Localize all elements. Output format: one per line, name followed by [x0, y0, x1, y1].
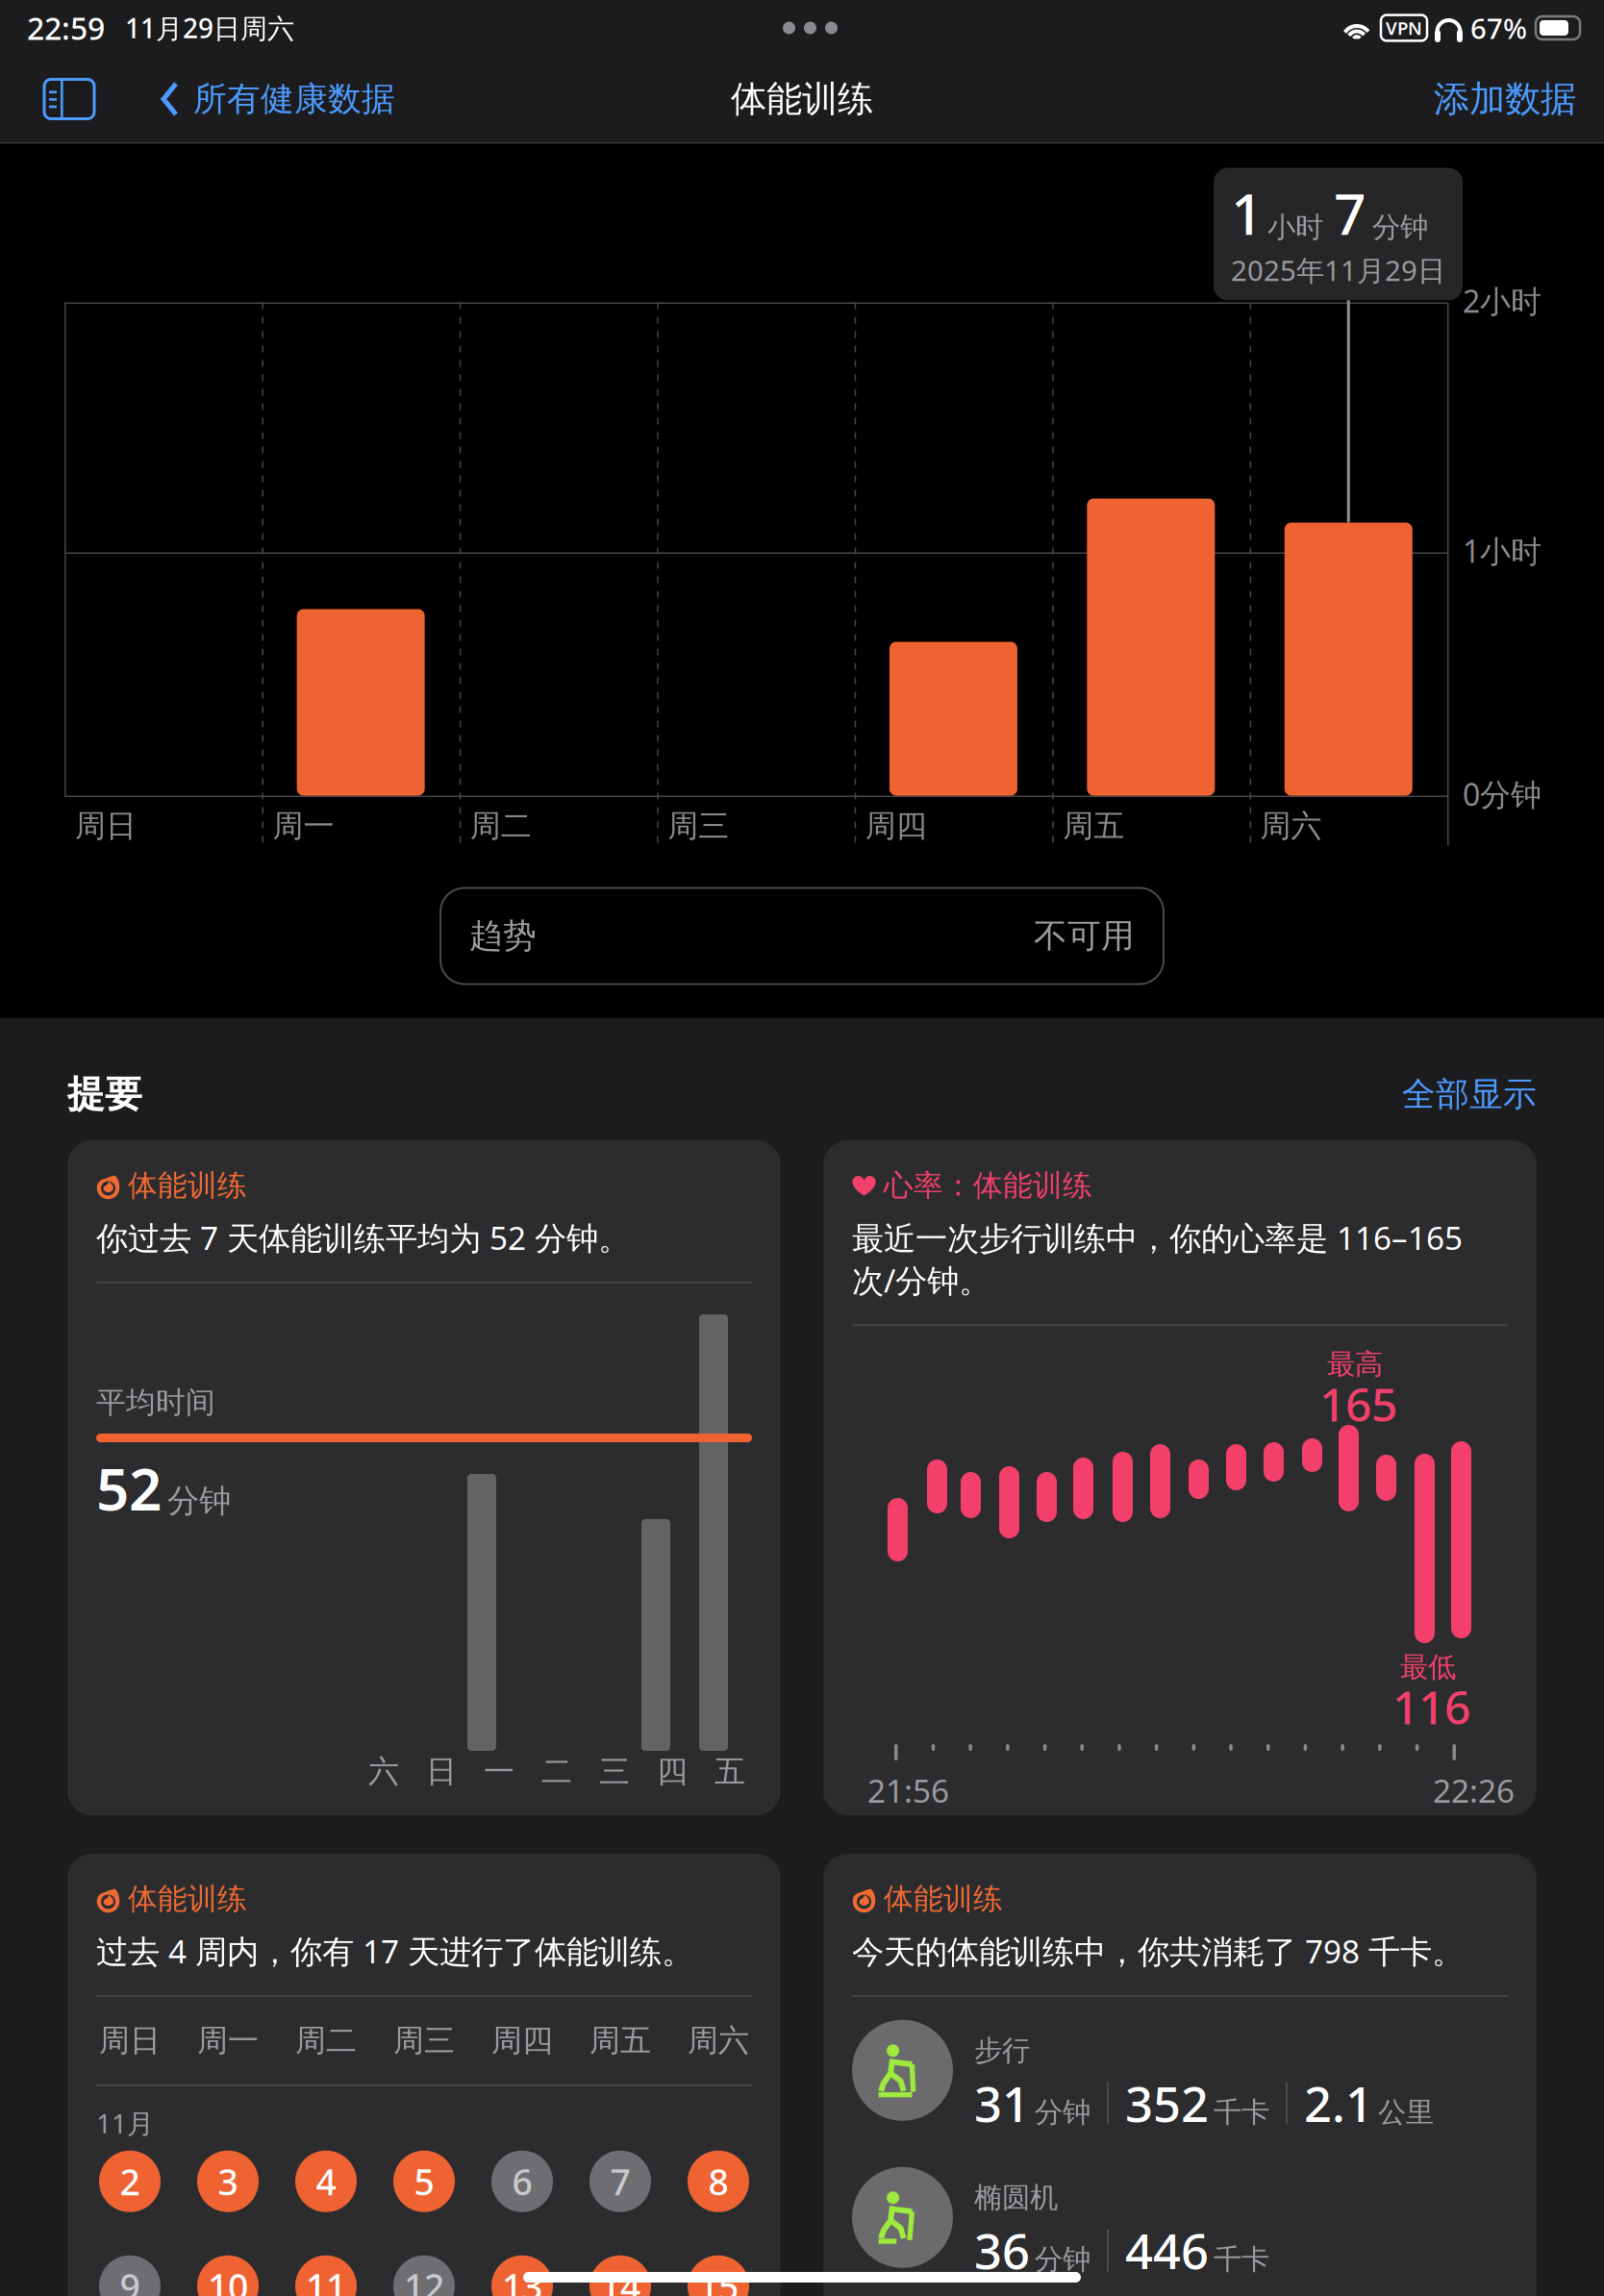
staticText: 22:26: [1433, 1769, 1515, 1812]
staticText: 周六: [1260, 807, 1322, 845]
staticText: 周二: [295, 2022, 357, 2060]
staticText: 周六: [688, 2022, 749, 2060]
staticText: 36: [974, 2218, 1030, 2283]
staticText: 22:59: [27, 7, 105, 48]
staticText: 周一: [197, 2022, 259, 2060]
staticText: 最近一次步行训练中，你的心率是 116–165 次/分钟。: [852, 1216, 1463, 1301]
staticText: 日: [426, 1753, 457, 1791]
staticText: 最高: [1327, 1347, 1383, 1382]
staticText: 周四: [491, 2022, 553, 2060]
staticText: 分钟: [1035, 2095, 1090, 2130]
staticText: 最低: [1400, 1650, 1456, 1685]
staticText: 9: [120, 2262, 140, 2296]
staticText: 14: [600, 2262, 640, 2296]
button[interactable]: 体能训练: [823, 1854, 1537, 2296]
staticText: 8: [708, 2158, 728, 2205]
staticText: 平均时间: [96, 1385, 215, 1421]
staticText: 11月29日周六: [125, 10, 294, 46]
staticText: 周二: [470, 807, 532, 845]
staticText: 13: [502, 2262, 542, 2296]
staticText: 2025年11月29日: [1231, 251, 1445, 289]
button[interactable]: 体能训练: [67, 1854, 781, 2296]
staticText: 添加数据: [1434, 77, 1576, 121]
staticText: 116: [1392, 1676, 1470, 1737]
staticText: 千卡: [1214, 2242, 1269, 2277]
staticText: 周日: [99, 2022, 161, 2060]
staticText: 不可用: [1034, 916, 1135, 956]
staticText: 三: [599, 1753, 630, 1791]
staticText: 所有健康数据: [193, 79, 395, 120]
staticText: 体能训练: [128, 1881, 247, 1917]
staticText: 四: [657, 1753, 688, 1791]
staticText: 1小时: [1463, 530, 1541, 571]
staticText: 周日: [75, 807, 137, 845]
staticText: 352: [1125, 2071, 1209, 2136]
staticText: 体能训练: [884, 1881, 1003, 1917]
staticText: 趋势: [469, 916, 537, 956]
staticText: 11: [306, 2262, 346, 2296]
staticText: 今天的体能训练中，你共消耗了 798 千卡。: [852, 1930, 1464, 1972]
staticText: 2.1: [1304, 2071, 1373, 2136]
staticText: 椭圆机: [974, 2180, 1058, 2215]
staticText: 446: [1125, 2218, 1209, 2283]
staticText: 67%: [1470, 9, 1527, 47]
staticText: 3: [218, 2158, 238, 2205]
staticText: 2: [120, 2158, 140, 2205]
staticText: 15: [698, 2262, 739, 2296]
staticText: 5: [414, 2158, 434, 2205]
staticText: 分钟: [1372, 210, 1428, 245]
staticText: 五: [714, 1753, 745, 1791]
button[interactable]: 全部显示: [1402, 1074, 1537, 1115]
staticText: 11月: [96, 2105, 154, 2141]
button[interactable]: 趋势: [440, 888, 1164, 984]
staticText: 全部显示: [1402, 1074, 1537, 1115]
staticText: 165: [1319, 1373, 1397, 1434]
staticText: 过去 4 周内，你有 17 天进行了体能训练。: [96, 1930, 693, 1972]
staticText: 10: [208, 2262, 248, 2296]
button[interactable]: 体能训练: [67, 1140, 781, 1815]
staticText: 六: [368, 1753, 399, 1791]
staticText: 提要: [67, 1072, 142, 1117]
staticText: 你过去 7 天体能训练平均为 52 分钟。: [96, 1216, 630, 1259]
staticText: 小时: [1267, 210, 1323, 245]
staticText: 12: [404, 2262, 444, 2296]
staticText: 52: [96, 1450, 162, 1527]
staticText: 1: [1231, 175, 1264, 250]
staticText: 二: [541, 1753, 572, 1791]
staticText: VPN: [1386, 16, 1422, 40]
staticText: 公里: [1378, 2095, 1434, 2130]
staticText: 周三: [393, 2022, 455, 2060]
staticText: 步行: [974, 2033, 1030, 2068]
staticText: 周五: [589, 2022, 651, 2060]
button[interactable]: 心率：体能训练: [823, 1140, 1537, 1815]
staticText: 7: [1334, 175, 1366, 250]
staticText: 0分钟: [1463, 774, 1541, 814]
staticText: 周三: [668, 807, 729, 845]
staticText: 体能训练: [731, 77, 873, 121]
staticText: 心率：体能训练: [884, 1167, 1092, 1204]
staticText: 31: [974, 2071, 1030, 2136]
staticText: 分钟: [1035, 2242, 1090, 2277]
staticText: 周一: [273, 807, 334, 845]
button[interactable]: 添加数据: [1424, 56, 1586, 142]
staticText: 体能训练: [128, 1167, 247, 1204]
staticText: 一: [484, 1753, 514, 1791]
staticText: 周五: [1063, 807, 1124, 845]
staticText: 分钟: [167, 1481, 231, 1521]
staticText: 21:56: [867, 1769, 949, 1812]
button[interactable]: 显示边栏: [35, 56, 104, 142]
staticText: 6: [512, 2158, 532, 2205]
staticText: 7: [610, 2158, 630, 2205]
button[interactable]: 所有健康数据: [150, 56, 405, 142]
staticText: 周四: [865, 807, 927, 845]
staticText: 4: [316, 2158, 336, 2205]
staticText: 千卡: [1214, 2095, 1269, 2130]
staticText: 2小时: [1463, 280, 1541, 321]
